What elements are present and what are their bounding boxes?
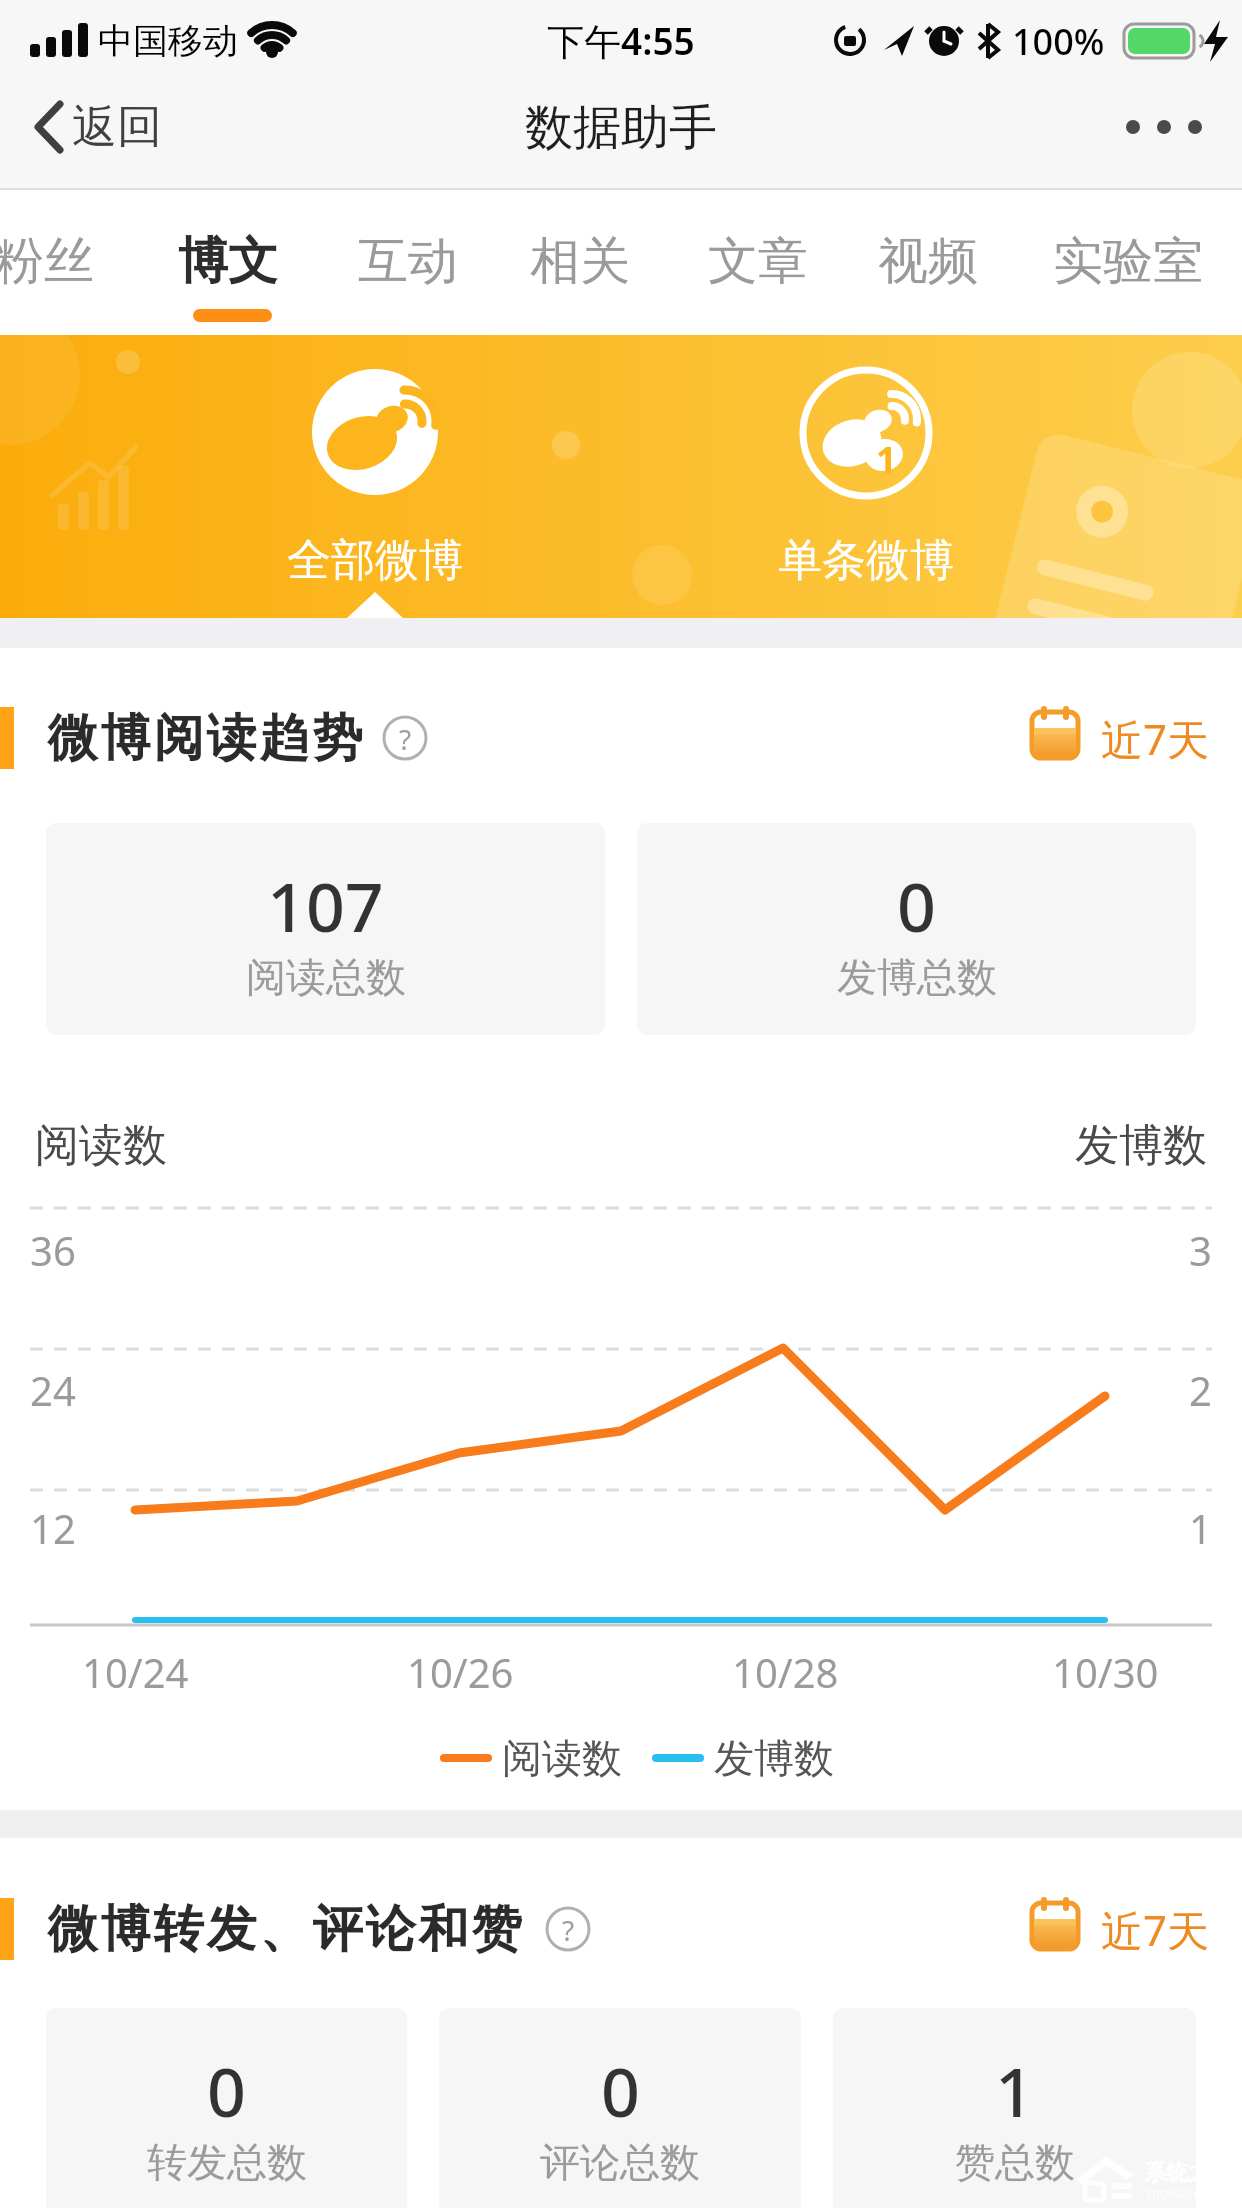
button[interactable]: [255, 345, 495, 595]
staticText: 下午4:55: [547, 15, 695, 66]
button[interactable]: 相关: [524, 216, 636, 316]
button[interactable]: 0: [439, 2008, 801, 2208]
button[interactable]: 107: [46, 823, 605, 1035]
staticText: 实验室: [1053, 230, 1203, 293]
staticText: 发博数: [1075, 1118, 1207, 1173]
staticText: 博文: [178, 230, 278, 293]
button[interactable]: 粉丝: [0, 216, 100, 316]
staticText: 3: [1189, 1223, 1212, 1277]
button[interactable]: 文章: [702, 216, 814, 316]
staticText: 0: [207, 2044, 246, 2137]
staticText: 微博转发、评论和赞: [46, 1898, 523, 1961]
staticText: 10/30: [1052, 1645, 1159, 1699]
staticText: 100%: [1012, 17, 1105, 66]
staticText: 阅读总数: [246, 952, 406, 1002]
staticText: 1: [1189, 1501, 1212, 1555]
button[interactable]: 实验室: [1046, 216, 1210, 316]
staticText: 中国移动: [98, 19, 238, 63]
staticText: 粉丝: [0, 230, 94, 293]
staticText: 视频: [878, 230, 978, 293]
button[interactable]: 博文: [172, 216, 284, 316]
staticText: 数据助手: [525, 98, 717, 158]
staticText: ?: [562, 1911, 575, 1949]
staticText: 0: [897, 859, 936, 952]
staticText: 全部微博: [287, 533, 463, 588]
staticText: 近7天: [1101, 1901, 1210, 1958]
staticText: 24: [30, 1363, 76, 1417]
staticText: 阅读数: [35, 1118, 167, 1173]
staticText: 10/24: [82, 1645, 189, 1699]
button[interactable]: 0: [637, 823, 1196, 1035]
button[interactable]: 视频: [872, 216, 984, 316]
button[interactable]: 1: [833, 2008, 1196, 2208]
staticText: 返回: [72, 99, 162, 156]
button[interactable]: 0: [46, 2008, 407, 2208]
button[interactable]: 互动: [352, 216, 464, 316]
staticText: 10/26: [407, 1645, 514, 1699]
staticText: 1: [876, 435, 897, 484]
staticText: 转发总数: [147, 2137, 307, 2187]
staticText: XITONGZHIJIA.NET: [1146, 2187, 1234, 2201]
staticText: 107: [267, 859, 384, 952]
button[interactable]: [1022, 1895, 1212, 1963]
staticText: 近7天: [1101, 710, 1210, 767]
staticText: 互动: [358, 230, 458, 293]
staticText: 相关: [530, 230, 630, 293]
staticText: 文章: [708, 230, 808, 293]
staticText: 1: [995, 2044, 1034, 2137]
staticText: 阅读数: [502, 1733, 622, 1783]
staticText: 赞总数: [955, 2137, 1075, 2187]
staticText: 0: [601, 2044, 640, 2137]
staticText: 单条微博: [778, 533, 954, 588]
staticText: 系统之家: [1144, 2159, 1232, 2187]
staticText: 10/28: [732, 1645, 839, 1699]
staticText: 发博总数: [837, 952, 997, 1002]
staticText: 36: [30, 1223, 76, 1277]
button[interactable]: [30, 84, 210, 170]
staticText: 2: [1189, 1363, 1212, 1417]
staticText: 12: [30, 1501, 76, 1555]
staticText: 发博数: [714, 1733, 834, 1783]
button[interactable]: [1022, 704, 1212, 772]
button[interactable]: [1110, 94, 1220, 164]
staticText: ?: [399, 720, 412, 758]
staticText: 微博阅读趋势: [46, 707, 364, 770]
button[interactable]: [746, 345, 986, 595]
staticText: 评论总数: [540, 2137, 700, 2187]
